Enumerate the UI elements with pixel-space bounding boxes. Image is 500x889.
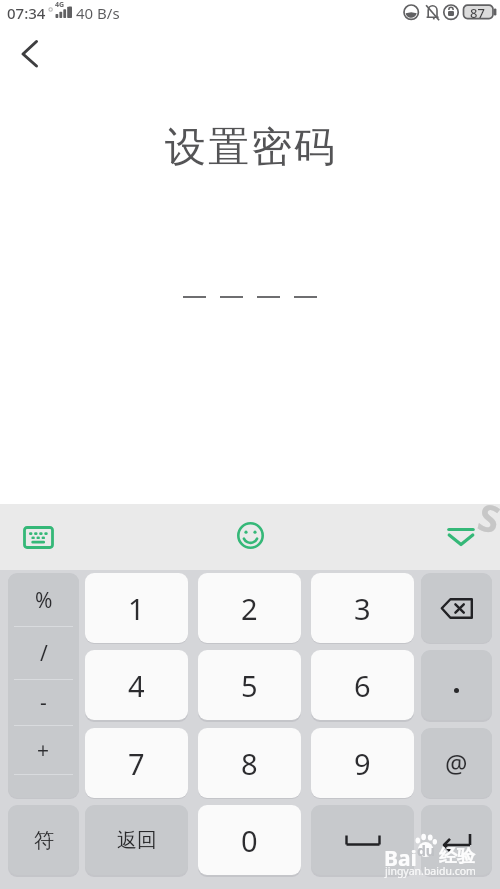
staticText: 87 xyxy=(470,4,485,22)
button[interactable]: 4 xyxy=(85,650,188,720)
staticText: 返回 xyxy=(117,828,157,853)
staticText: 07:34 xyxy=(7,3,46,23)
staticText: 6 xyxy=(354,666,371,705)
button[interactable]: 返回 xyxy=(85,805,188,875)
button[interactable]: 8 xyxy=(198,728,301,798)
staticText: 5 xyxy=(241,666,258,705)
button[interactable]: 2 xyxy=(198,573,301,643)
staticText: 9 xyxy=(354,744,371,783)
button[interactable]: 6 xyxy=(311,650,414,720)
button[interactable]: 符 xyxy=(8,805,79,875)
button[interactable]: 3 xyxy=(311,573,414,643)
staticText: 4G xyxy=(55,0,65,10)
button[interactable]: 1 xyxy=(85,573,188,643)
button[interactable]: 0 xyxy=(198,805,301,875)
button[interactable] xyxy=(421,573,492,643)
button[interactable] xyxy=(228,513,272,557)
staticText: 0 xyxy=(241,821,258,860)
staticText: 1 xyxy=(128,589,145,628)
staticText: S xyxy=(473,490,500,544)
staticText: 3 xyxy=(354,589,371,628)
button[interactable]: 5 xyxy=(198,650,301,720)
button[interactable]: @ xyxy=(421,728,492,798)
staticText: @ xyxy=(445,746,468,780)
staticText: 符 xyxy=(34,828,54,853)
staticText: 8 xyxy=(241,744,258,783)
button[interactable]: 9 xyxy=(311,728,414,798)
staticText: 7 xyxy=(128,744,145,783)
staticText: 2 xyxy=(241,589,258,628)
button[interactable] xyxy=(421,805,492,875)
button[interactable] xyxy=(311,805,414,875)
staticText: 40 B/s xyxy=(76,3,120,23)
staticText: % xyxy=(35,586,53,615)
staticText: du xyxy=(417,841,435,860)
staticText: 经验 xyxy=(439,845,475,868)
staticText: Bai xyxy=(384,844,417,873)
staticText: 4 xyxy=(128,666,145,705)
button[interactable] xyxy=(12,514,64,560)
staticText: jingyan.baidu.com xyxy=(385,864,476,878)
staticText: / xyxy=(40,639,48,668)
staticText: + xyxy=(37,736,50,765)
staticText: - xyxy=(40,688,47,717)
button[interactable] xyxy=(438,512,484,562)
button[interactable] xyxy=(12,36,48,72)
button[interactable]: % xyxy=(8,573,79,798)
button[interactable] xyxy=(421,650,492,720)
staticText: 设置密码 xyxy=(164,122,336,174)
button[interactable]: 7 xyxy=(85,728,188,798)
